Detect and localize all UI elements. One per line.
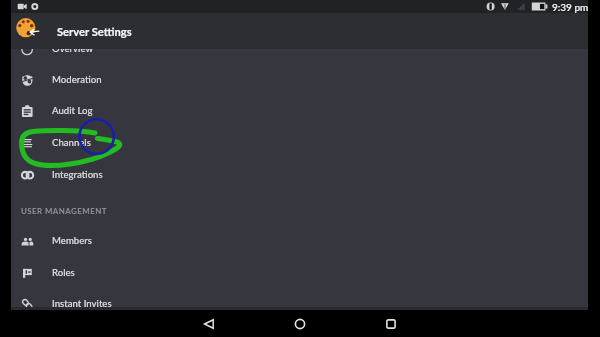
button[interactable]: Members (11, 225, 588, 257)
staticText: Integrations (52, 169, 103, 181)
staticText: Instant Invites (52, 298, 112, 307)
staticText: Audit Log (52, 105, 93, 117)
button[interactable]: Recent apps (365, 310, 417, 337)
button[interactable]: Audit Log (11, 95, 588, 127)
staticText: USER MANAGEMENT (21, 206, 107, 215)
staticText: Server Settings (57, 25, 132, 38)
button[interactable]: Instant Invites (11, 288, 588, 307)
button[interactable]: Overview (11, 49, 588, 65)
button[interactable]: Home (274, 310, 326, 337)
button[interactable]: Roles (11, 257, 588, 289)
button[interactable]: Moderation (11, 64, 588, 96)
button[interactable]: Channels (11, 127, 588, 159)
staticText: Roles (52, 267, 75, 279)
button[interactable]: Back (183, 310, 235, 337)
staticText: Members (52, 235, 92, 247)
staticText: Moderation (52, 74, 102, 86)
staticText: Overview (52, 49, 94, 55)
staticText: Channels (52, 137, 91, 149)
staticText: 9:39 pm (552, 1, 589, 13)
button[interactable]: Integrations (11, 159, 588, 191)
button[interactable]: Back (11, 13, 47, 49)
